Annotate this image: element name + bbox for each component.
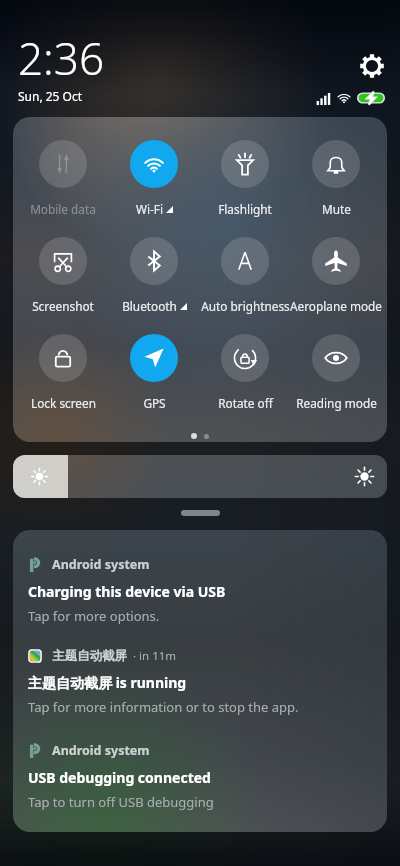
staticText: Tap to turn off USB debugging <box>28 793 214 811</box>
staticText: Aeroplane mode <box>290 298 382 314</box>
staticText: Lock screen <box>31 395 96 411</box>
staticText: Mute <box>322 201 351 217</box>
staticText: Reading mode <box>296 395 377 411</box>
staticText: Charging this device via USB <box>28 582 226 601</box>
button[interactable] <box>200 140 290 222</box>
staticText: Wi-Fi <box>136 201 163 217</box>
button[interactable]: Android system <box>28 556 372 625</box>
staticText: 主题自动截屏 <box>52 648 127 664</box>
staticText: Auto brightness <box>201 298 290 314</box>
staticText: 2:36 <box>18 28 105 88</box>
staticText: Flashlight <box>218 201 272 217</box>
button[interactable] <box>200 334 290 416</box>
button[interactable] <box>291 237 381 319</box>
staticText: GPS <box>143 395 166 411</box>
staticText: Tap for more information or to stop the … <box>28 698 299 716</box>
staticText: · in 11m <box>133 648 177 664</box>
staticText: USB debugging connected <box>28 768 211 787</box>
button[interactable]: Android system <box>28 742 372 811</box>
button[interactable] <box>109 237 199 319</box>
button[interactable] <box>291 334 381 416</box>
staticText: Mobile data <box>30 201 96 217</box>
staticText: Android system <box>52 742 150 759</box>
button[interactable]: 主题自动截屏 <box>28 648 372 716</box>
button[interactable] <box>18 334 108 416</box>
button[interactable] <box>18 237 108 319</box>
button[interactable] <box>13 455 387 498</box>
staticText: Tap for more options. <box>28 607 160 625</box>
staticText: Android system <box>52 556 150 573</box>
staticText: Sun, 25 Oct <box>18 88 83 104</box>
staticText: Screenshot <box>32 298 94 314</box>
staticText: Rotate off <box>218 395 273 411</box>
staticText: 主题自动截屏 is running <box>28 673 187 692</box>
button[interactable] <box>18 140 108 222</box>
button[interactable] <box>109 334 199 416</box>
button[interactable] <box>291 140 381 222</box>
staticText: Bluetooth <box>122 298 177 314</box>
button[interactable] <box>200 237 290 319</box>
button[interactable] <box>109 140 199 222</box>
button[interactable]: Settings <box>360 54 384 78</box>
